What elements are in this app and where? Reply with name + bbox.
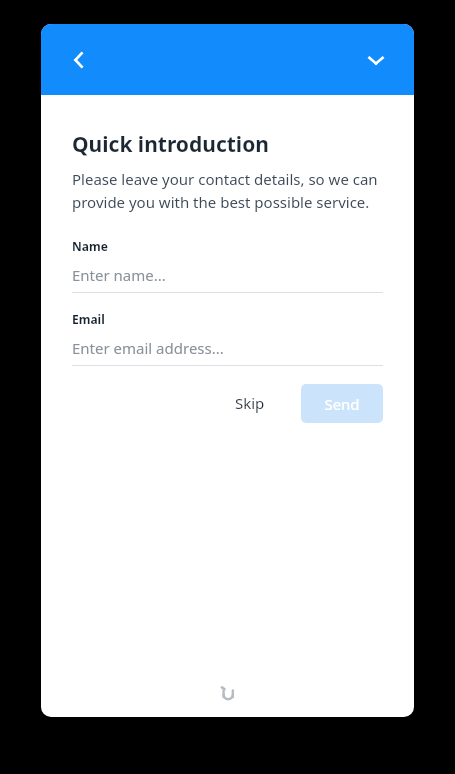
- staticText: Please leave your contact details, so we…: [72, 169, 383, 212]
- button[interactable]: Enter name...: [72, 263, 383, 286]
- button[interactable]: Skip: [225, 383, 275, 423]
- staticText: Enter email address...: [72, 338, 224, 358]
- staticText: Email: [72, 311, 105, 327]
- staticText: Send: [324, 394, 360, 414]
- button[interactable]: Minimize: [356, 40, 396, 80]
- button[interactable]: Back: [59, 40, 99, 80]
- staticText: Name: [72, 238, 108, 254]
- button[interactable]: Enter email address...: [72, 336, 383, 359]
- staticText: Enter name...: [72, 265, 166, 285]
- button[interactable]: Send: [301, 384, 383, 423]
- staticText: Quick introduction: [72, 130, 269, 159]
- staticText: Skip: [235, 393, 265, 413]
